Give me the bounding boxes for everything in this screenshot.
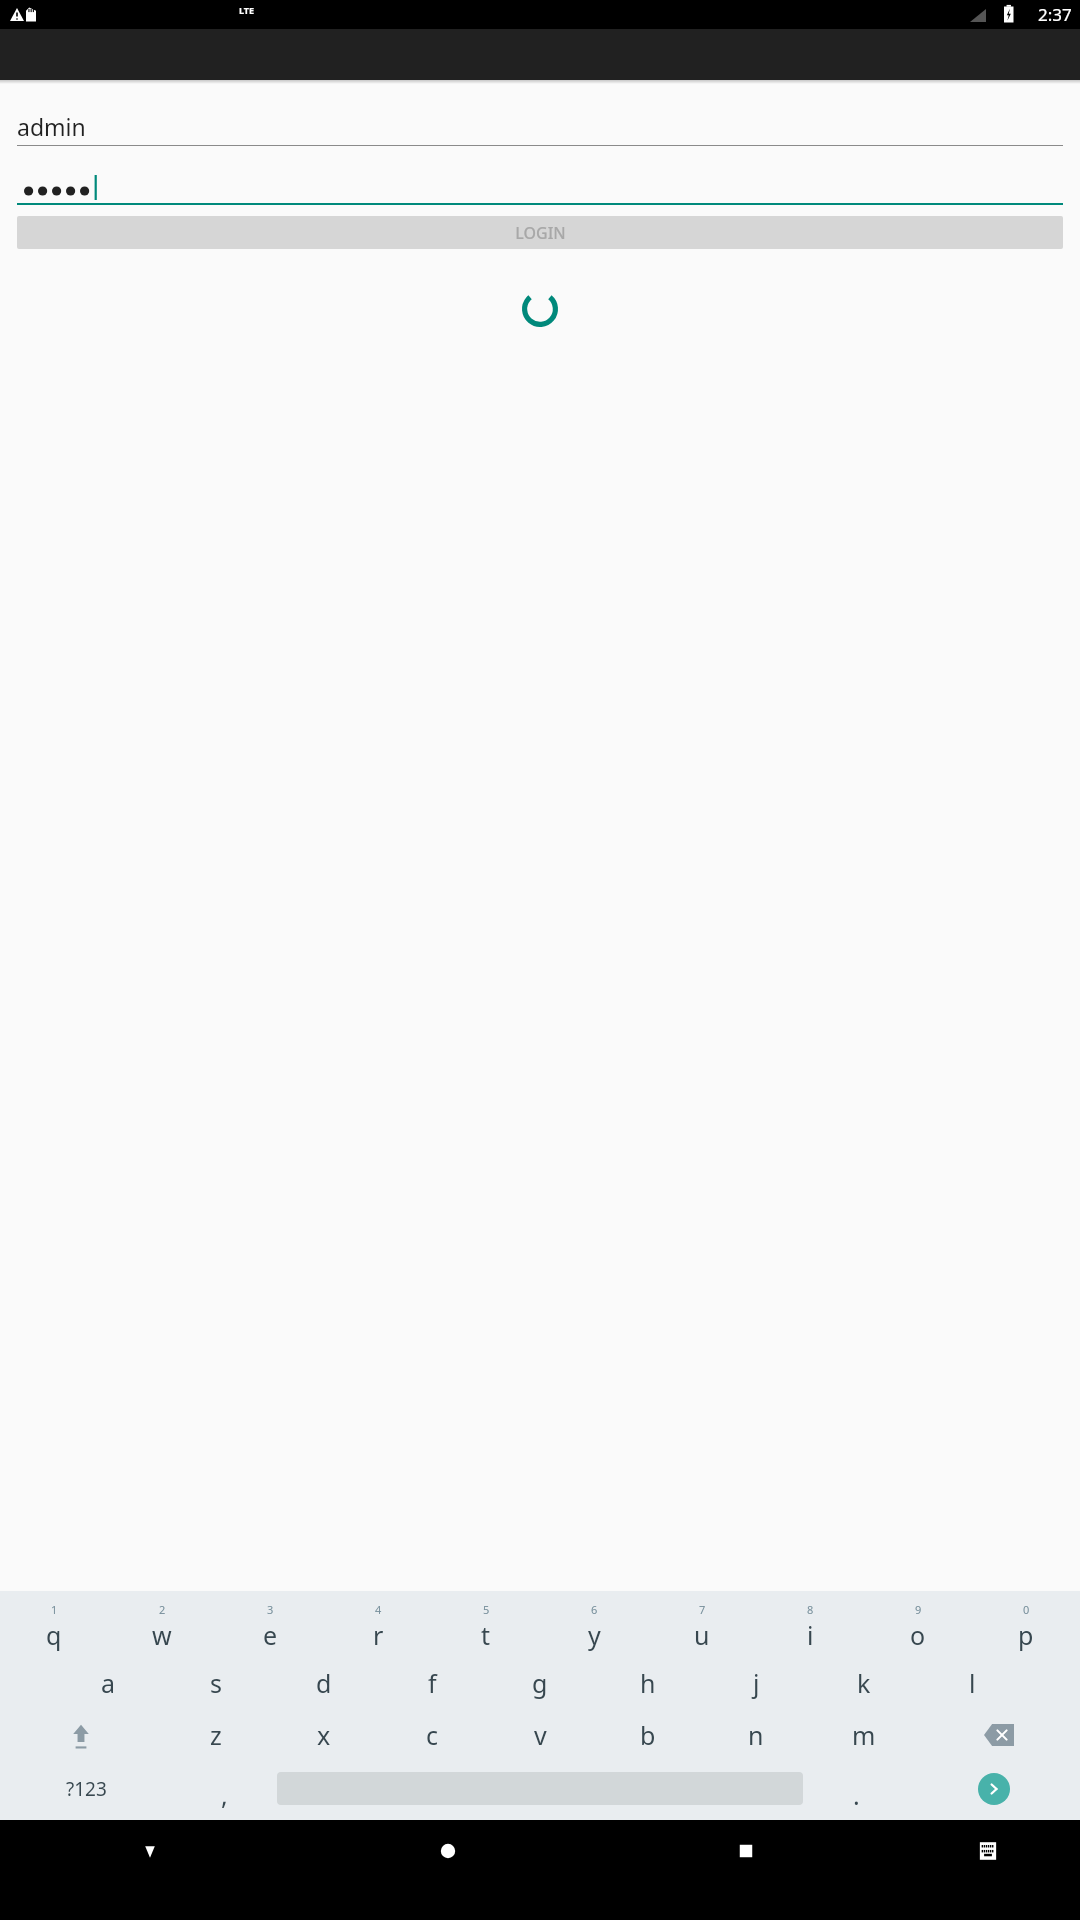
button[interactable]: 8 [756, 1599, 864, 1657]
button[interactable]: s [162, 1657, 270, 1709]
staticText: . [853, 1778, 860, 1812]
staticText: q [46, 1618, 62, 1652]
staticText: d [316, 1666, 332, 1700]
staticText: e [263, 1618, 278, 1652]
staticText: 5 [483, 1602, 490, 1617]
button[interactable]: Shift [0, 1709, 162, 1761]
staticText: o [910, 1618, 926, 1652]
button[interactable]: b [594, 1709, 702, 1761]
staticText: f [428, 1666, 437, 1700]
button[interactable]: Switch keyboard [895, 1820, 1080, 1882]
staticText: 8 [807, 1602, 814, 1617]
button[interactable]: 2 [108, 1599, 216, 1657]
staticText: b [640, 1718, 656, 1752]
staticText: s [210, 1666, 222, 1700]
staticText: k [857, 1666, 871, 1700]
button[interactable]: , [173, 1761, 275, 1816]
staticText: u [694, 1618, 710, 1652]
staticText: 9 [915, 1602, 922, 1617]
button[interactable]: f [378, 1657, 486, 1709]
button[interactable]: k [810, 1657, 918, 1709]
staticText: r [373, 1618, 384, 1652]
staticText: h [640, 1666, 656, 1700]
staticText: v [534, 1718, 547, 1752]
button[interactable]: h [594, 1657, 702, 1709]
staticText: 0 [1023, 1602, 1030, 1617]
button[interactable]: admin [17, 106, 1063, 146]
button[interactable]: . [805, 1761, 907, 1816]
staticText: LTE [239, 4, 255, 16]
button[interactable]: Backspace [918, 1709, 1080, 1761]
button[interactable]: Home [299, 1820, 597, 1882]
button[interactable]: 4 [324, 1599, 432, 1657]
staticText: z [210, 1718, 222, 1752]
staticText: admin [17, 111, 86, 142]
button[interactable]: 6 [540, 1599, 648, 1657]
staticText: x [317, 1718, 331, 1752]
button[interactable] [17, 165, 1063, 205]
button[interactable]: x [270, 1709, 378, 1761]
button[interactable]: c [378, 1709, 486, 1761]
button[interactable]: Enter [907, 1761, 1080, 1816]
button[interactable]: n [702, 1709, 810, 1761]
staticText: l [969, 1666, 976, 1700]
button[interactable]: Recents [597, 1820, 895, 1882]
staticText: 1 [51, 1602, 58, 1617]
button[interactable]: 9 [864, 1599, 972, 1657]
staticText: 4 [375, 1602, 382, 1617]
staticText: m [852, 1718, 876, 1752]
staticText: LOGIN [515, 222, 566, 244]
button[interactable]: z [162, 1709, 270, 1761]
button[interactable]: l [918, 1657, 1026, 1709]
staticText: 2 [159, 1602, 166, 1617]
button[interactable]: 3 [216, 1599, 324, 1657]
staticText: a [101, 1666, 116, 1700]
button[interactable]: 0 [972, 1599, 1080, 1657]
staticText: t [481, 1618, 491, 1652]
button[interactable]: a [54, 1657, 162, 1709]
staticText: j [753, 1666, 760, 1700]
staticText: 2:37 [1038, 3, 1072, 26]
staticText: y [588, 1618, 601, 1652]
staticText: c [426, 1718, 439, 1752]
staticText: ?123 [66, 1776, 107, 1802]
button[interactable]: LOGIN [17, 216, 1063, 249]
button[interactable]: 1 [0, 1599, 108, 1657]
button[interactable]: v [486, 1709, 594, 1761]
button[interactable]: 5 [432, 1599, 540, 1657]
staticText: w [152, 1618, 172, 1652]
button[interactable]: j [702, 1657, 810, 1709]
staticText: 3 [267, 1602, 274, 1617]
staticText: p [1018, 1618, 1034, 1652]
button[interactable]: m [810, 1709, 918, 1761]
staticText: 6 [591, 1602, 598, 1617]
button[interactable]: 7 [648, 1599, 756, 1657]
staticText: n [748, 1718, 764, 1752]
button[interactable]: Hide keyboard [0, 1820, 299, 1882]
staticText: g [532, 1666, 548, 1700]
button[interactable]: d [270, 1657, 378, 1709]
staticText: 7 [699, 1602, 706, 1617]
staticText: , [221, 1778, 228, 1812]
button[interactable]: g [486, 1657, 594, 1709]
staticText: i [807, 1618, 814, 1652]
button[interactable]: ?123 [0, 1761, 173, 1816]
